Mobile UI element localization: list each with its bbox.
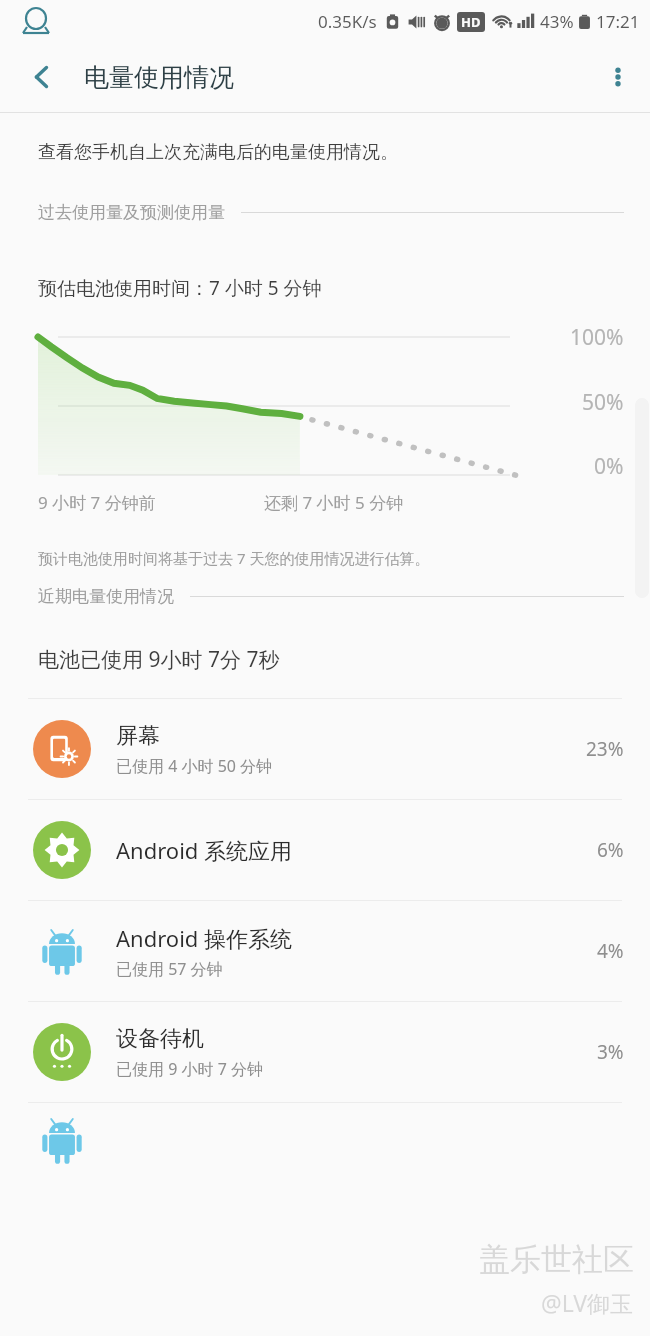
staticText: 预计电池使用时间将基于过去 7 天您的使用情况进行估算。 bbox=[38, 548, 430, 568]
staticText: 电量使用情况 bbox=[84, 62, 234, 93]
button[interactable]: Android 操作系统 bbox=[0, 901, 650, 1001]
staticText: 过去使用量及预测使用量 bbox=[38, 202, 225, 223]
button[interactable]: Back bbox=[0, 42, 84, 112]
staticText: 电池已使用 9小时 7分 7秒 bbox=[38, 645, 280, 674]
staticText: 盖乐世社区 bbox=[479, 1240, 634, 1279]
button[interactable]: Android 系统应用 bbox=[0, 800, 650, 900]
staticText: 0.35K/s bbox=[318, 10, 377, 33]
staticText: 100% bbox=[570, 323, 624, 352]
staticText: 43% bbox=[540, 10, 574, 33]
staticText: 17:21 bbox=[596, 10, 640, 33]
staticText: 已使用 4 小时 50 分钟 bbox=[116, 755, 273, 777]
staticText: Android 系统应用 bbox=[116, 835, 293, 865]
staticText: 近期电量使用情况 bbox=[38, 586, 174, 607]
staticText: 50% bbox=[582, 388, 624, 417]
staticText: 已使用 57 分钟 bbox=[116, 958, 223, 980]
staticText: 0% bbox=[594, 452, 624, 481]
staticText: @LV御玉 bbox=[541, 1287, 634, 1318]
button[interactable]: More options bbox=[586, 42, 650, 112]
staticText: 6% bbox=[597, 837, 624, 863]
staticText: 23% bbox=[586, 736, 624, 762]
staticText: 3% bbox=[597, 1039, 624, 1065]
staticText: 预估电池使用时间：7 小时 5 分钟 bbox=[38, 275, 322, 301]
staticText: 4% bbox=[597, 938, 624, 964]
staticText: 9 小时 7 分钟前 bbox=[38, 491, 156, 514]
staticText: 查看您手机自上次充满电后的电量使用情况。 bbox=[38, 141, 398, 164]
staticText: 已使用 9 小时 7 分钟 bbox=[116, 1058, 263, 1080]
button[interactable]: 设备待机 bbox=[0, 1002, 650, 1102]
staticText: 设备待机 bbox=[116, 1025, 204, 1053]
button[interactable]: 屏幕 bbox=[0, 699, 650, 799]
staticText: Android 操作系统 bbox=[116, 923, 293, 953]
staticText: 还剩 7 小时 5 分钟 bbox=[264, 491, 404, 514]
staticText: 屏幕 bbox=[116, 722, 160, 750]
staticText: HD bbox=[461, 13, 481, 31]
